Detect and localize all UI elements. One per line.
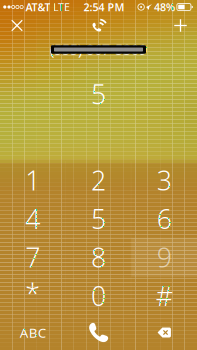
button[interactable]: 6 (131, 199, 197, 238)
staticText: 48% (154, 0, 175, 14)
button[interactable]: Add number to contacts (164, 14, 197, 37)
staticText: (555) 867-5309 (50, 39, 147, 59)
staticText: ABC (20, 324, 46, 341)
button[interactable]: 1 (0, 161, 66, 199)
staticText: 0 (91, 278, 106, 313)
staticText: 6 (157, 201, 172, 236)
staticText: 8 (91, 239, 106, 275)
staticText: # (156, 278, 173, 313)
staticText: 9 (157, 239, 172, 275)
staticText: * (25, 275, 40, 311)
button[interactable]: Delete (131, 315, 197, 350)
button[interactable]: 9 (131, 238, 197, 276)
button[interactable]: Call (66, 315, 131, 350)
staticText: 1 (25, 162, 40, 198)
button[interactable]: 0 (66, 276, 131, 315)
button[interactable]: * (0, 276, 66, 315)
staticText: LTE (53, 0, 70, 14)
staticText: 2 (91, 162, 106, 198)
button[interactable]: 2 (66, 161, 131, 199)
staticText: 3 (157, 162, 172, 198)
staticText: 5 (91, 201, 106, 236)
staticText: AT&T (25, 0, 50, 14)
staticText: 7 (25, 239, 40, 275)
button[interactable]: 8 (66, 238, 131, 276)
button[interactable]: 5 (66, 199, 131, 238)
staticText: 4 (25, 201, 40, 236)
button[interactable]: ABC (0, 315, 66, 350)
button[interactable]: 7 (0, 238, 66, 276)
button[interactable]: 4 (0, 199, 66, 238)
staticText: 2:54 PM (83, 0, 124, 14)
button[interactable]: Close keypad (0, 14, 34, 37)
button[interactable]: Active call (81, 14, 115, 37)
button[interactable]: 3 (131, 161, 197, 199)
button[interactable]: # (131, 276, 197, 315)
staticText: 5 (91, 76, 106, 112)
